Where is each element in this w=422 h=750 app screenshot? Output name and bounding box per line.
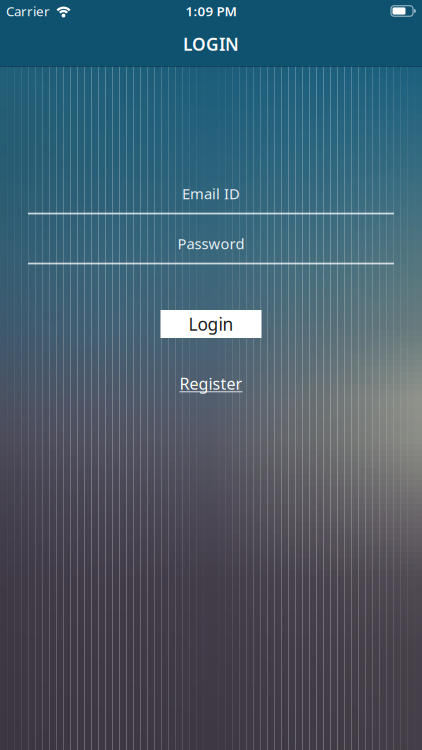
button[interactable]: Login <box>160 310 261 338</box>
staticText: Password <box>177 234 244 253</box>
staticText: Email ID <box>182 184 240 203</box>
button[interactable]: Password <box>28 234 394 265</box>
staticText: Register <box>179 373 242 394</box>
staticText: Login <box>188 312 233 335</box>
staticText: LOGIN <box>183 32 239 55</box>
button[interactable]: Email ID <box>28 184 394 215</box>
staticText: Carrier <box>6 2 50 20</box>
staticText: 1:09 PM <box>185 2 236 20</box>
button[interactable]: Register <box>179 373 242 394</box>
